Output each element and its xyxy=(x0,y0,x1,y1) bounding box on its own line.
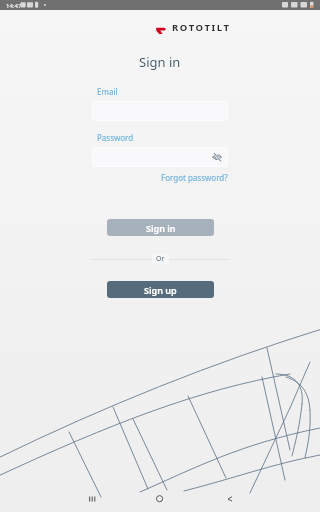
button[interactable]: Show password xyxy=(93,148,227,166)
button[interactable]: Home xyxy=(148,487,170,509)
staticText: 14:47 xyxy=(6,2,22,10)
button[interactable]: Sign in xyxy=(107,219,214,236)
staticText: ROTOTILT xyxy=(172,21,231,34)
button[interactable]: Sign up xyxy=(107,281,214,298)
button[interactable]: Show password xyxy=(212,152,222,162)
button[interactable]: Forgot password? xyxy=(161,172,228,183)
staticText: Password xyxy=(97,132,134,143)
staticText: Sign in xyxy=(146,222,176,234)
staticText: Or xyxy=(156,254,165,264)
button[interactable]: Recents xyxy=(81,487,103,509)
button[interactable]: Back xyxy=(218,487,240,509)
staticText: Email xyxy=(97,86,118,97)
staticText: Sign up xyxy=(144,284,177,296)
staticText: Sign in xyxy=(139,53,181,71)
